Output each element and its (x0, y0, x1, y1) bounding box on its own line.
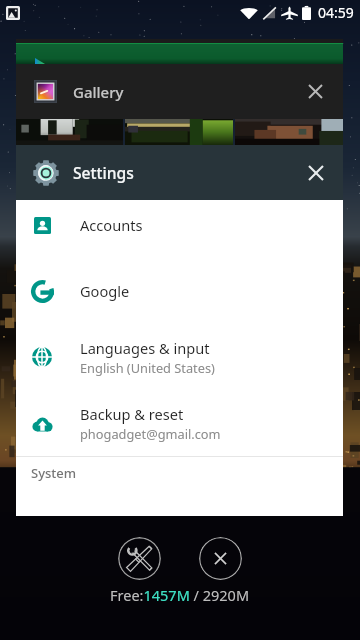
button[interactable]: Languages & input (16, 324, 343, 390)
staticText: Google (80, 281, 130, 301)
staticText: Free:1457M / 2920M (110, 585, 250, 605)
staticText: Languages & input (80, 338, 210, 358)
button[interactable]: Tools (118, 537, 161, 580)
button[interactable]: Google (16, 258, 343, 324)
button[interactable]: Close Settings (288, 145, 343, 200)
staticText: Gallery (73, 82, 124, 102)
button[interactable]: Accounts (16, 200, 343, 258)
button[interactable]: Gallery (16, 64, 343, 119)
button[interactable]: Close Gallery (288, 64, 343, 119)
staticText: System (31, 464, 77, 482)
staticText: 04:59 (318, 3, 354, 22)
button[interactable]: Settings (16, 145, 343, 200)
button[interactable]: Close all (199, 537, 242, 580)
staticText: Settings (73, 162, 134, 183)
staticText: English (United States) (80, 359, 215, 376)
button[interactable]: Backup & reset (16, 390, 343, 456)
staticText: Accounts (80, 215, 143, 235)
staticText: phogadget@gmail.com (80, 425, 221, 442)
staticText: Backup & reset (80, 404, 184, 424)
